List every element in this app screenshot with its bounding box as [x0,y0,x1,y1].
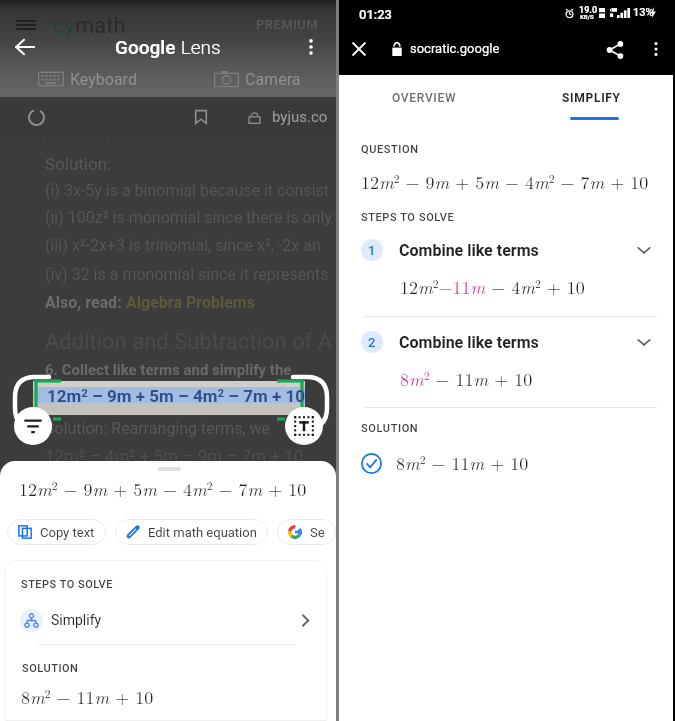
staticText: KB/S [580,13,594,20]
button[interactable]: Back [8,31,42,63]
button[interactable]: Share [597,32,632,67]
staticText: PREMIUM [256,17,318,32]
staticText: 19.0 [579,5,598,16]
staticText: 8m2 − 11m + 10 [396,450,529,476]
staticText: QUESTION [361,143,419,156]
staticText: Se [310,525,325,540]
staticText: 12m2−11m − 4m2 + 10 [400,274,585,300]
staticText: cy [53,13,75,39]
staticText: SOLUTION [361,422,419,435]
button[interactable]: Copy text [7,519,106,545]
staticText: Lens [176,36,221,58]
staticText: 1 [368,243,376,258]
button[interactable]: Close [342,32,376,66]
button[interactable]: Select text [285,407,323,445]
button[interactable]: More options [294,31,328,63]
button[interactable]: Edit math equation [115,519,268,545]
staticText: Addition and Subtraction of A [45,329,333,355]
staticText: Combine like terms [399,333,539,352]
staticText: Keyboard [70,70,137,89]
staticText: STEPS TO SOLVE [361,211,455,224]
staticText: 12m2 – 9m + 5m – 4m2 – 7m + 10 [47,386,305,406]
staticText: Camera [245,70,301,89]
button[interactable]: OVERVIEW [339,75,510,121]
staticText: math [75,13,126,39]
button[interactable]: Se [277,519,336,545]
staticText: Simplify [51,612,102,628]
staticText: 01:23 [359,7,393,22]
button[interactable]: 1 [339,238,673,262]
staticText: (iv) 32 is a monomial since it represent… [45,265,329,284]
staticText: STEPS TO SOLVE [21,578,113,591]
staticText: (iii) x²-2x+3 is trinomial, since x², -2… [45,236,321,255]
button[interactable]: 2 [339,330,673,354]
staticText: Combine like terms [399,241,539,260]
staticText: Solution: Rearranging terms, we [45,419,271,438]
staticText: 12m2 − 9m + 5m − 4m2 − 7m + 10 [361,169,649,195]
staticText: SOLUTION [22,662,79,675]
staticText: 12m2 − 9m + 5m − 4m2 − 7m + 10 [19,476,307,502]
staticText: Also, read: [45,293,126,312]
staticText: SIMPLIFY [562,91,621,105]
staticText: Edit math equation [148,525,257,540]
staticText: 6. Collect like terms and simplify the [45,361,292,379]
staticText: Copy text [40,525,95,540]
button[interactable]: Camera [214,64,301,94]
staticText: 2 [368,335,376,350]
button[interactable]: More options [639,32,673,66]
staticText: 8m2 − 11m + 10 [400,366,533,392]
staticText: (i) 3x-5y is a binomial because it consi… [45,181,330,200]
staticText: 12m² – 4m² + 5m – 9m – 7m + 10 [45,446,304,466]
staticText: Algebra Problems [126,293,255,312]
button[interactable]: SIMPLIFY [510,75,673,121]
staticText: OVERVIEW [392,91,457,105]
button[interactable]: Simplify [5,603,327,637]
staticText: Google [115,36,176,58]
staticText: (ii) 100z² is monomial since there is on… [45,208,332,227]
button[interactable]: Filter [14,407,52,445]
staticText: byjus.com [272,108,336,126]
staticText: 8m2 − 11m + 10 [21,684,154,710]
staticText: 13% [633,6,654,19]
staticText: socratic.google [410,41,500,56]
staticText: Solution: [45,154,112,174]
button[interactable]: Keyboard [38,64,137,94]
